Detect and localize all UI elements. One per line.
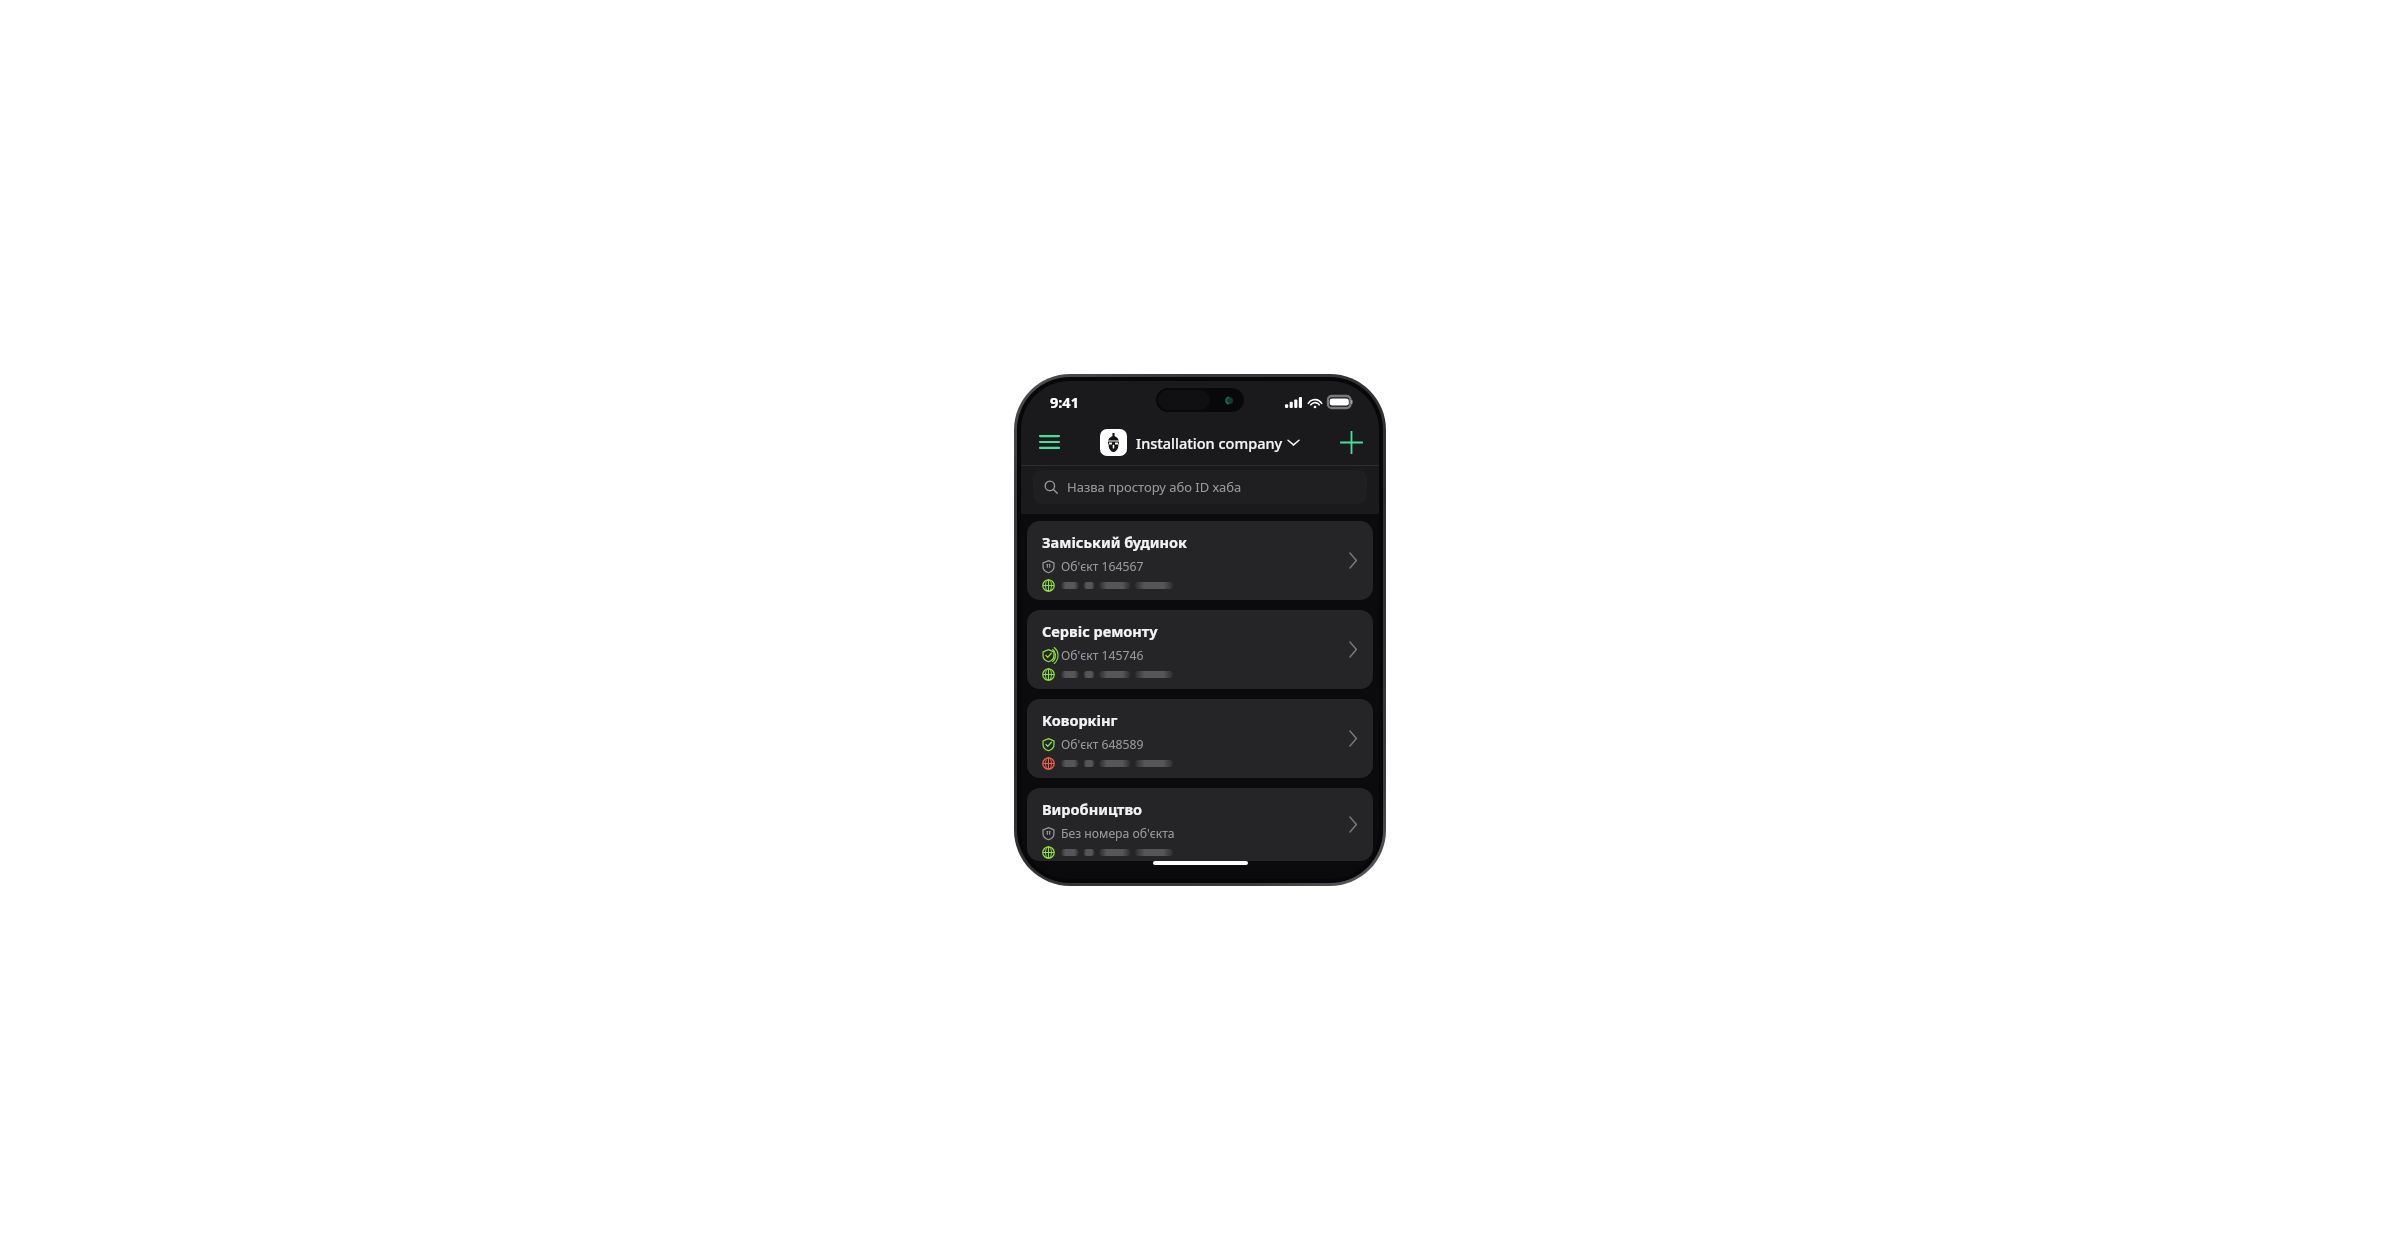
staticText: Сервіс ремонту: [1042, 621, 1158, 641]
button[interactable]: Заміський будинок: [1027, 521, 1373, 600]
button[interactable]: Назва простору або ID хаба: [1033, 470, 1367, 504]
button[interactable]: Коворкінг: [1027, 699, 1373, 778]
staticText: Без номера об'єкта: [1061, 825, 1175, 842]
button[interactable]: Виробництво: [1027, 788, 1373, 861]
staticText: Об'єкт 145746: [1061, 647, 1144, 664]
button[interactable]: Menu: [1032, 425, 1066, 459]
staticText: Виробництво: [1042, 799, 1143, 819]
staticText: Назва простору або ID хаба: [1067, 478, 1242, 496]
button[interactable]: Installation company: [1100, 429, 1299, 456]
button[interactable]: Сервіс ремонту: [1027, 610, 1373, 689]
staticText: Об'єкт 164567: [1061, 558, 1144, 575]
staticText: Коворкінг: [1042, 710, 1118, 730]
staticText: Заміський будинок: [1042, 532, 1187, 552]
staticText: Об'єкт 648589: [1061, 736, 1144, 753]
staticText: Installation company: [1136, 433, 1283, 453]
button[interactable]: Add space: [1334, 425, 1368, 459]
staticText: 9:41: [1050, 392, 1079, 412]
